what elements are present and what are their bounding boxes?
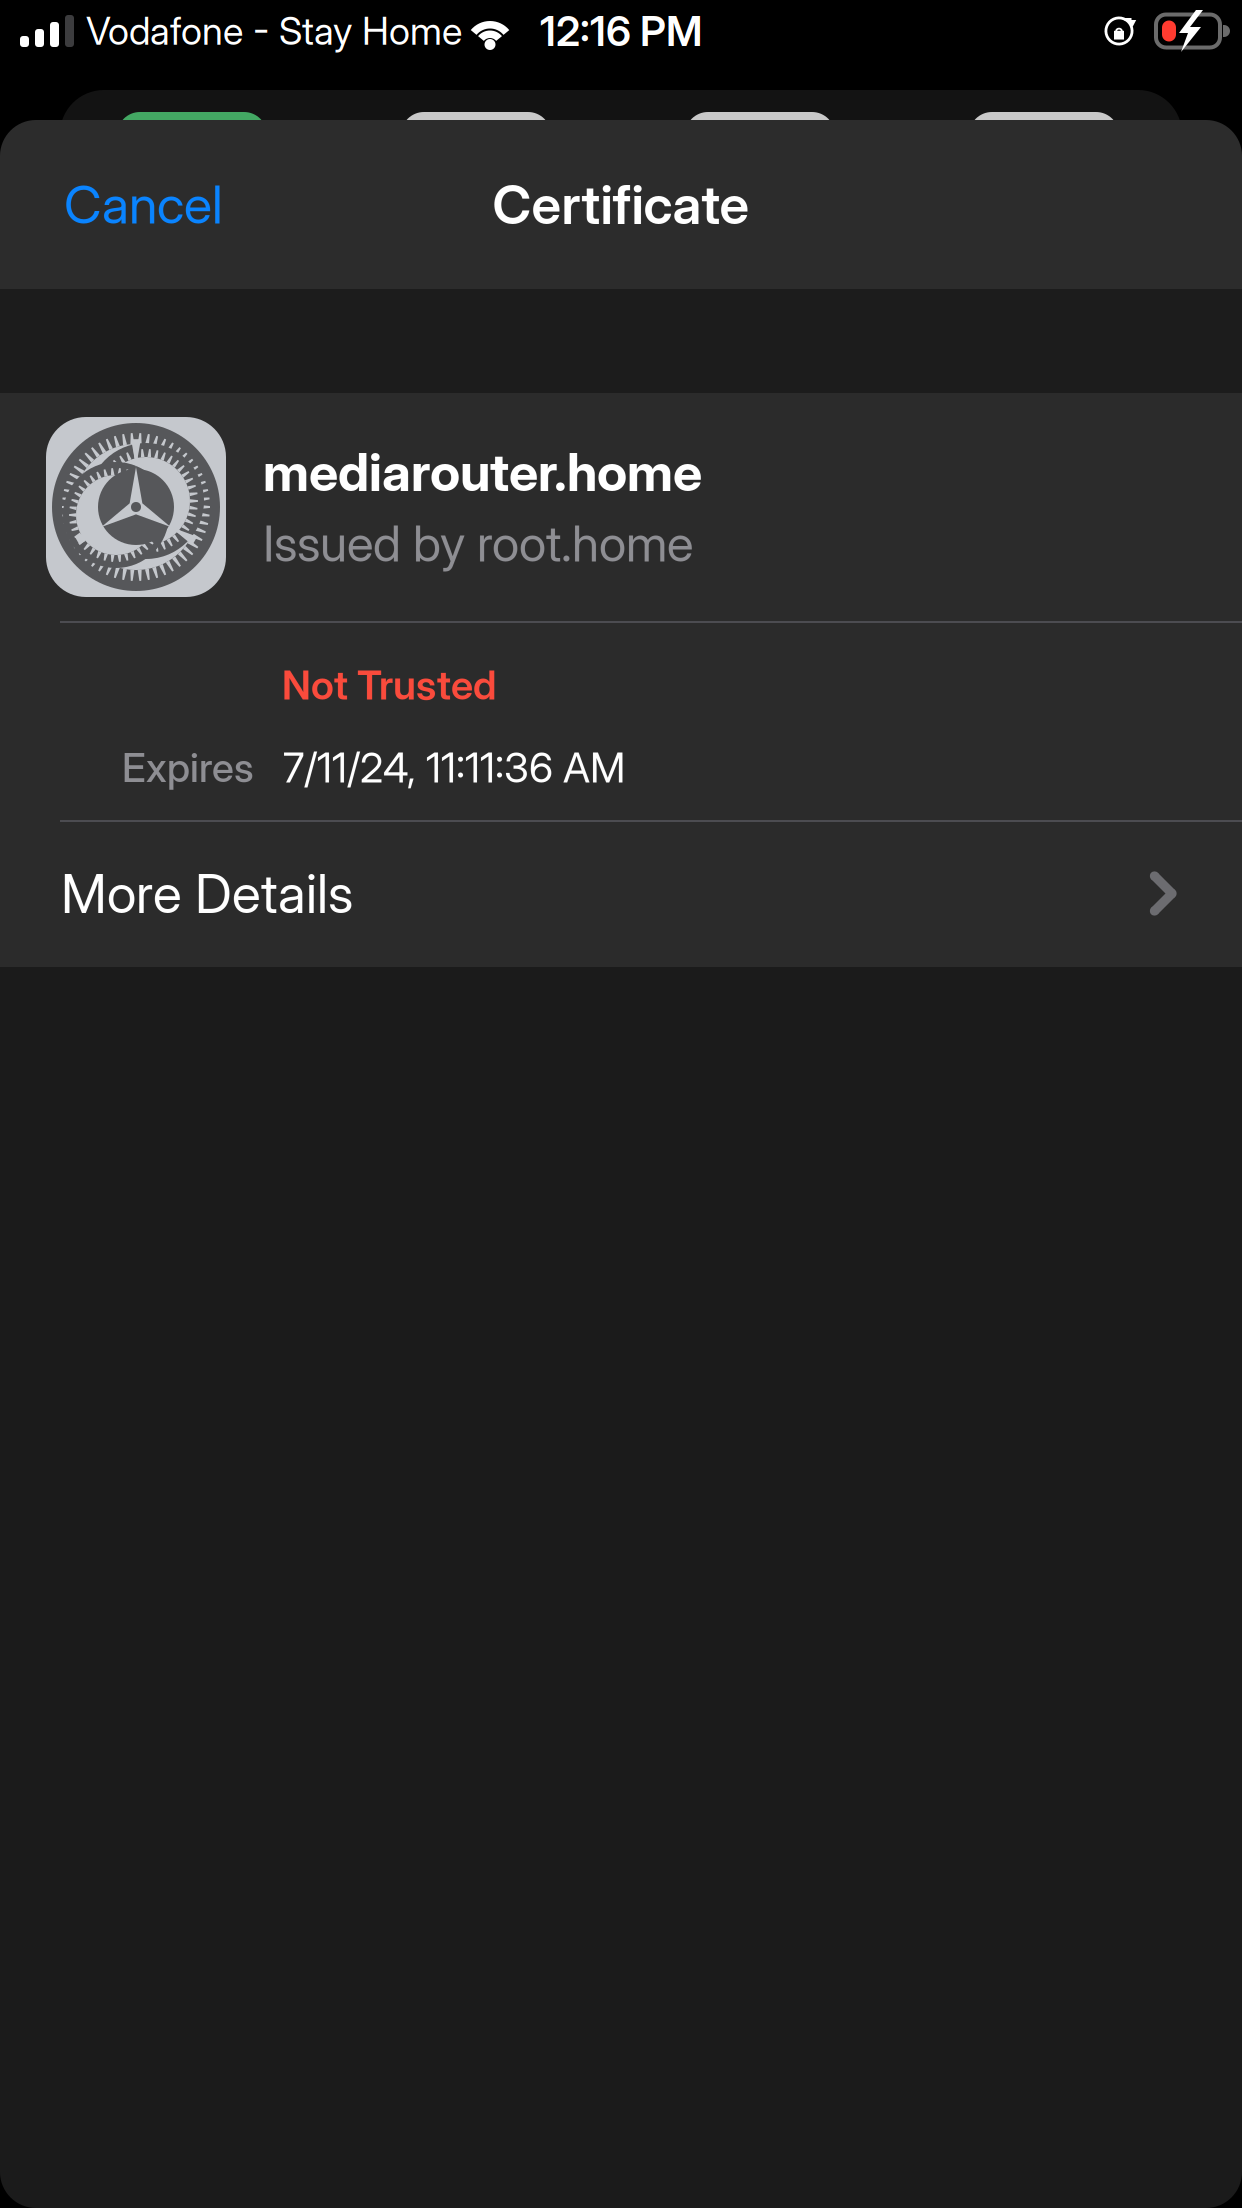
staticText: Certificate xyxy=(492,172,749,237)
button[interactable]: Cancel xyxy=(0,120,294,289)
staticText: Vodafone - Stay Home xyxy=(86,8,462,54)
staticText: Cancel xyxy=(64,173,223,236)
staticText: Expires xyxy=(122,743,254,792)
staticText: More Details xyxy=(61,861,353,926)
staticText: mediarouter.home xyxy=(263,441,702,504)
staticText: Not Trusted xyxy=(282,661,496,709)
staticText: Issued by root.home xyxy=(263,514,693,573)
staticText: 7/11/24, 11:11:36 AM xyxy=(283,742,625,792)
staticText: 12:16 PM xyxy=(540,6,702,56)
button[interactable]: More Details xyxy=(0,822,1242,965)
